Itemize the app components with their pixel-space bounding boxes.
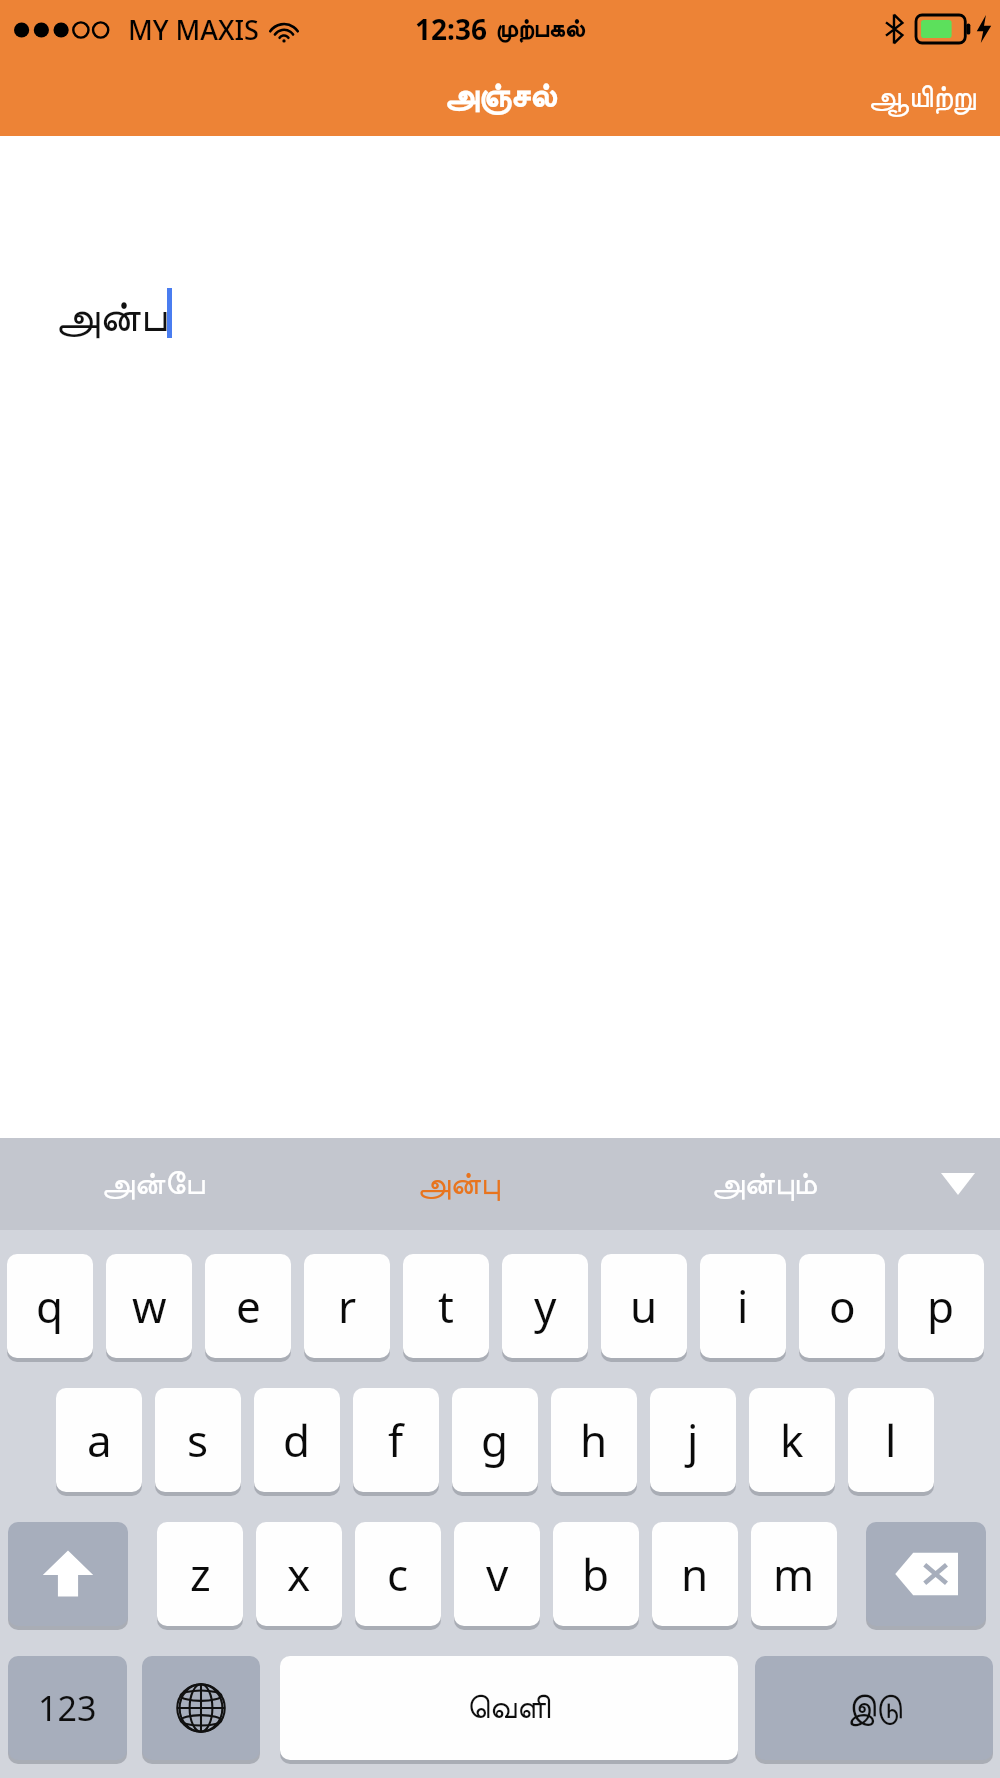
button[interactable]: Hide suggestions <box>916 1138 1000 1230</box>
staticText: அன்பும் <box>711 1168 817 1200</box>
staticText: j <box>687 1410 699 1470</box>
staticText: i <box>737 1276 749 1336</box>
button[interactable]: k <box>749 1388 835 1496</box>
button[interactable]: w <box>106 1254 192 1362</box>
button[interactable]: u <box>601 1254 687 1362</box>
staticText: 12:36 <box>415 10 495 48</box>
staticText: h <box>580 1410 608 1470</box>
staticText: w <box>132 1276 167 1336</box>
button[interactable]: Shift <box>8 1522 128 1630</box>
button[interactable]: Change language <box>142 1656 260 1764</box>
staticText: c <box>387 1544 409 1604</box>
staticText: அஞ்சல் <box>444 81 556 114</box>
staticText: e <box>236 1276 261 1336</box>
button[interactable]: வெளி <box>280 1656 738 1764</box>
button[interactable]: a <box>56 1388 142 1496</box>
staticText: g <box>481 1410 509 1470</box>
button[interactable]: n <box>652 1522 738 1630</box>
button[interactable]: e <box>205 1254 291 1362</box>
button[interactable]: o <box>799 1254 885 1362</box>
button[interactable]: அன்பும் <box>611 1138 916 1230</box>
button[interactable]: d <box>254 1388 340 1496</box>
staticText: t <box>438 1276 454 1336</box>
staticText: k <box>780 1410 804 1470</box>
button[interactable]: v <box>454 1522 540 1630</box>
staticText: q <box>36 1276 64 1336</box>
button[interactable]: ஆயிற்று <box>844 72 1000 123</box>
button[interactable]: Numbers <box>8 1656 127 1764</box>
staticText: b <box>582 1544 610 1604</box>
button[interactable]: b <box>553 1522 639 1630</box>
button[interactable]: i <box>700 1254 786 1362</box>
button[interactable]: r <box>304 1254 390 1362</box>
button[interactable]: c <box>355 1522 441 1630</box>
staticText: d <box>283 1410 311 1470</box>
button[interactable]: s <box>155 1388 241 1496</box>
button[interactable]: f <box>353 1388 439 1496</box>
staticText: f <box>388 1410 404 1470</box>
staticText: z <box>190 1544 211 1604</box>
staticText: x <box>287 1544 311 1604</box>
staticText: அன்பு <box>417 1168 500 1200</box>
button[interactable]: அன்பே <box>0 1138 306 1230</box>
staticText: s <box>187 1410 209 1470</box>
button[interactable]: l <box>848 1388 934 1496</box>
staticText: n <box>681 1544 709 1604</box>
staticText: o <box>829 1276 856 1336</box>
button[interactable]: Backspace <box>866 1522 986 1630</box>
staticText: MY MAXIS <box>128 11 259 48</box>
button[interactable]: g <box>452 1388 538 1496</box>
staticText: v <box>486 1544 509 1604</box>
staticText: y <box>534 1276 557 1336</box>
staticText: r <box>338 1276 357 1336</box>
staticText: இடு <box>847 1692 902 1725</box>
staticText: l <box>885 1410 897 1470</box>
staticText: p <box>927 1276 955 1336</box>
button[interactable]: Return <box>755 1656 993 1764</box>
button[interactable]: h <box>551 1388 637 1496</box>
button[interactable]: அன்பு <box>306 1138 611 1230</box>
staticText: 123 <box>38 1685 97 1731</box>
button[interactable]: t <box>403 1254 489 1362</box>
staticText: முற்பகல் <box>495 17 585 42</box>
staticText: u <box>630 1276 658 1336</box>
staticText: வெளி <box>467 1692 551 1725</box>
button[interactable]: j <box>650 1388 736 1496</box>
staticText: a <box>87 1410 112 1470</box>
button[interactable]: y <box>502 1254 588 1362</box>
button[interactable]: p <box>898 1254 984 1362</box>
button[interactable]: m <box>751 1522 837 1630</box>
button[interactable]: z <box>157 1522 243 1630</box>
staticText: ஆயிற்று <box>868 82 976 113</box>
button[interactable]: x <box>256 1522 342 1630</box>
staticText: அன்ப <box>55 297 167 340</box>
staticText: அன்பே <box>101 1168 205 1200</box>
button[interactable]: q <box>7 1254 93 1362</box>
staticText: m <box>773 1544 815 1604</box>
